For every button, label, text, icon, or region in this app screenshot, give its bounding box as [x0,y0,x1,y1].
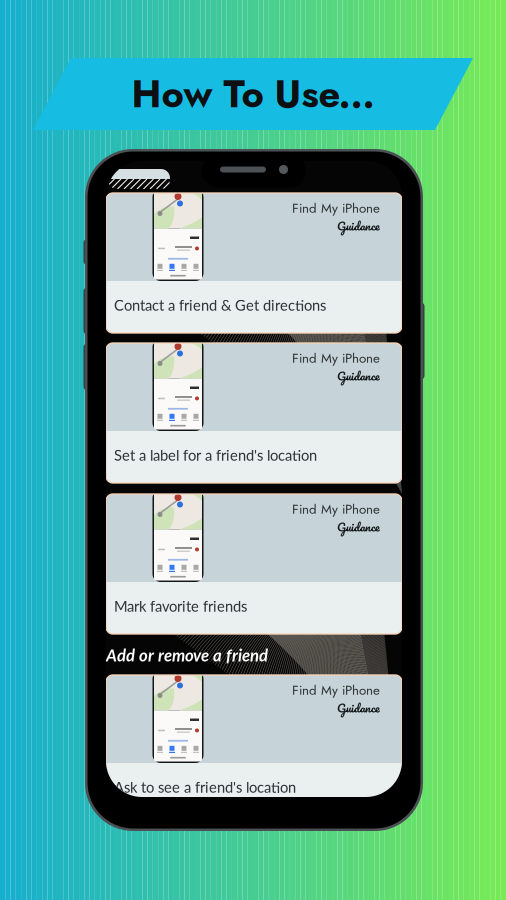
staticText: Find My iPhone [292,348,380,368]
button[interactable]: Find My iPhone [106,675,402,815]
staticText: Guidance [337,517,380,537]
staticText: Contact a friend & Get directions [114,296,326,314]
staticText: Add or remove a friend [106,645,268,665]
staticText: How To Use... [131,66,374,121]
staticText: Find My iPhone [292,499,380,519]
staticText: Find My iPhone [292,680,380,700]
staticText: Ask to see a friend's location [114,778,296,796]
staticText: Guidance [337,216,380,236]
staticText: Mark favorite friends [114,597,247,615]
staticText: Set a label for a friend's location [114,446,317,464]
staticText: Guidance [337,366,380,386]
button[interactable]: Find My iPhone [106,193,402,333]
staticText: Guidance [337,698,380,718]
button[interactable]: Find My iPhone [106,494,402,634]
staticText: Find My iPhone [292,198,380,218]
button[interactable]: Find My iPhone [106,343,402,483]
